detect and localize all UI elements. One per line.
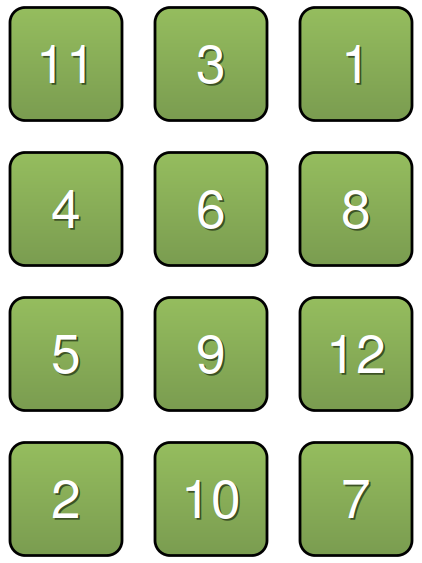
button[interactable]: 11 <box>10 7 122 120</box>
staticText: 3 <box>198 24 228 100</box>
staticText: 7 <box>341 457 371 533</box>
staticText: 9 <box>198 314 228 390</box>
staticText: 1 <box>341 22 371 98</box>
staticText: 11 <box>36 22 96 98</box>
staticText: 2 <box>53 459 83 535</box>
staticText: 1 <box>343 24 373 100</box>
staticText: 4 <box>51 167 81 243</box>
button[interactable]: 12 <box>300 297 412 410</box>
staticText: 2 <box>51 457 81 533</box>
button[interactable]: 2 <box>10 442 122 555</box>
staticText: 12 <box>328 314 388 390</box>
staticText: 6 <box>196 167 226 243</box>
staticText: 3 <box>196 22 226 98</box>
staticText: 9 <box>196 312 226 388</box>
button[interactable]: 3 <box>155 7 267 120</box>
staticText: 11 <box>38 24 98 100</box>
button[interactable]: 7 <box>300 442 412 555</box>
staticText: 4 <box>53 169 83 245</box>
button[interactable]: 1 <box>300 7 412 120</box>
staticText: 12 <box>326 312 386 388</box>
button[interactable]: 8 <box>300 152 412 265</box>
staticText: 6 <box>198 169 228 245</box>
staticText: 10 <box>183 459 243 535</box>
staticText: 8 <box>341 167 371 243</box>
staticText: 5 <box>53 314 83 390</box>
button[interactable]: 6 <box>155 152 267 265</box>
button[interactable]: 10 <box>155 442 267 555</box>
staticText: 7 <box>343 459 373 535</box>
button[interactable]: 4 <box>10 152 122 265</box>
staticText: 8 <box>343 169 373 245</box>
staticText: 5 <box>51 312 81 388</box>
button[interactable]: 5 <box>10 297 122 410</box>
button[interactable]: 9 <box>155 297 267 410</box>
staticText: 10 <box>181 457 241 533</box>
